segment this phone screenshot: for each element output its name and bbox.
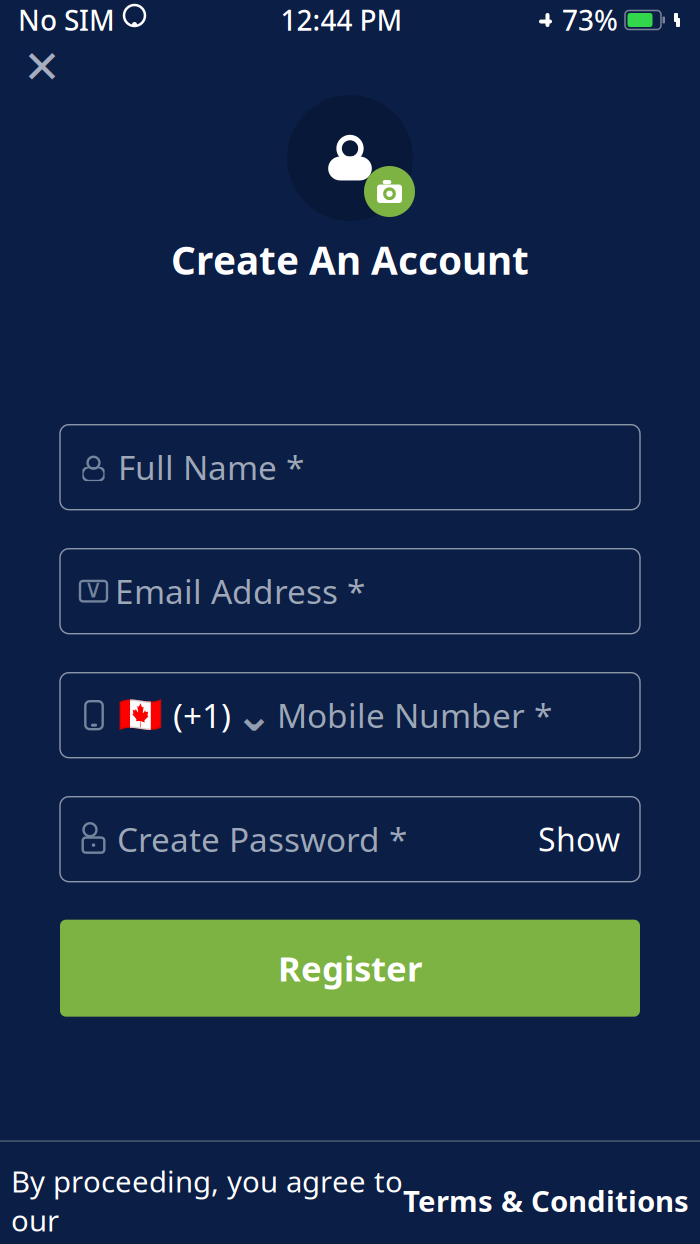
staticText: ✕ — [23, 41, 61, 93]
staticText: Create An Account — [171, 234, 529, 285]
button[interactable]: Create Password * — [60, 797, 640, 882]
staticText: By proceeding, you agree to our — [11, 1162, 403, 1240]
staticText: Register — [278, 945, 422, 991]
button[interactable]: 🇨🇦 — [60, 673, 640, 758]
staticText: ⌄ — [235, 689, 273, 741]
staticText: Terms & Conditions — [403, 1181, 689, 1220]
button[interactable]: ∨ — [60, 549, 640, 634]
staticText: 🇨🇦 — [118, 695, 163, 736]
staticText: Mobile Number * — [277, 693, 552, 737]
staticText: ∨ — [84, 574, 103, 603]
staticText: Create Password * — [117, 817, 407, 861]
staticText: 12:44 PM — [280, 1, 402, 39]
staticText: (+1) — [173, 693, 231, 737]
staticText: Show — [538, 818, 620, 860]
staticText: Email Address * — [115, 569, 365, 613]
button[interactable]: Full Name * — [60, 425, 640, 510]
button[interactable]: Register — [60, 920, 640, 1017]
button[interactable]: Close — [0, 40, 65, 90]
staticText: Full Name * — [118, 445, 304, 489]
button[interactable]: By proceeding, you agree to our — [0, 1142, 700, 1244]
button[interactable]: Change photo — [364, 166, 415, 217]
staticText: No SIM — [18, 1, 115, 39]
staticText: 73% — [562, 1, 618, 39]
